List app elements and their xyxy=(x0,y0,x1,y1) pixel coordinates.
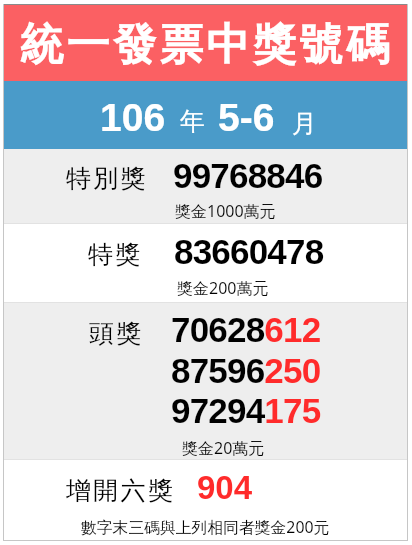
staticText: 統一發票中獎號碼 xyxy=(20,18,393,72)
staticText: 特獎 xyxy=(88,239,143,270)
staticText: 獎金1000萬元 xyxy=(175,200,276,222)
button[interactable]: 統一發票中獎號碼 xyxy=(0,4,412,81)
staticText: 頭獎 xyxy=(89,318,144,349)
button[interactable]: 頭獎 xyxy=(0,303,412,460)
staticText: 增開六獎 xyxy=(66,475,176,506)
button[interactable]: 106 xyxy=(0,81,412,149)
staticText: 106 xyxy=(100,96,166,140)
staticText: 87596250 xyxy=(171,351,321,390)
button[interactable]: 特別獎 xyxy=(0,149,412,224)
staticText: 5-6 xyxy=(218,96,275,140)
staticText: 獎金20萬元 xyxy=(182,437,265,459)
staticText: 99768846 xyxy=(173,156,323,195)
staticText: 特別獎 xyxy=(66,163,148,194)
staticText: 904 xyxy=(197,469,253,506)
staticText: 年 xyxy=(180,106,205,137)
staticText: 月 xyxy=(292,108,317,139)
staticText: 數字末三碼與上列相同者獎金200元 xyxy=(81,516,330,538)
staticText: 70628612 xyxy=(171,310,321,349)
staticText: 獎金200萬元 xyxy=(177,277,269,299)
button[interactable]: 特獎 xyxy=(0,224,412,303)
staticText: 97294175 xyxy=(171,391,321,430)
button[interactable]: 增開六獎 xyxy=(0,460,412,539)
staticText: 83660478 xyxy=(174,232,324,271)
